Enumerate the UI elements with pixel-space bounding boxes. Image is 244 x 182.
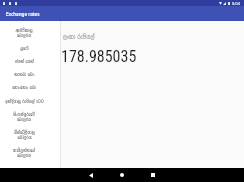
staticText: 8:04: [232, 1, 240, 6]
button[interactable]: හොංකොං ඩො: [0, 81, 60, 94]
button[interactable]: සිංගප්පූරුවේ ඩොලරය: [0, 108, 60, 126]
button[interactable]: ඇමරිකානු ඩොලරය: [0, 24, 60, 42]
staticText: Exchange rates: [6, 11, 40, 17]
button[interactable]: Back: [82, 168, 100, 182]
staticText: ලංකා රුපියල්: [63, 32, 95, 41]
staticText: ඕස්ට්‍රේලියානු ඩොලරය: [14, 129, 35, 141]
button[interactable]: ඉන්දියානු රුපියල් 100: [0, 94, 60, 108]
staticText: සිංගප්පූරුවේ ඩොලරය: [13, 111, 35, 123]
staticText: කැනඩා ඩො.: [14, 71, 35, 78]
staticText: යුරෝ: [20, 45, 29, 52]
staticText: තායිලන්තයේ ඩොලරය: [13, 147, 35, 159]
button[interactable]: කැනඩා ඩො.: [0, 68, 60, 81]
staticText: හොංකොං ඩො: [12, 84, 36, 91]
button[interactable]: තායිලන්තයේ ඩොලරය: [0, 144, 60, 162]
staticText: ඉන්දියානු රුපියල් 100: [5, 98, 44, 105]
button[interactable]: Recents: [144, 168, 162, 182]
button[interactable]: Home: [113, 168, 131, 182]
button[interactable]: ජපන් යෙන්: [0, 55, 60, 68]
button[interactable]: යුරෝ: [0, 42, 60, 55]
staticText: 178.985035: [61, 47, 137, 66]
button[interactable]: ඕස්ට්‍රේලියානු ඩොලරය: [0, 126, 60, 144]
staticText: ඇමරිකානු ඩොලරය: [15, 27, 33, 39]
staticText: ජපන් යෙන්: [15, 58, 34, 65]
